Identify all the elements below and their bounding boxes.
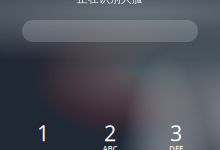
staticText: 2 [104, 119, 116, 147]
button[interactable]: 1 [14, 114, 72, 150]
staticText: 1 [37, 119, 49, 147]
staticText: 3 [170, 119, 182, 147]
staticText: 正在识别人脸 [77, 0, 143, 5]
staticText: DEF [169, 144, 183, 150]
button[interactable]: 2 [81, 114, 139, 150]
button[interactable]: 3 [147, 114, 205, 150]
staticText: ABC [102, 144, 117, 150]
